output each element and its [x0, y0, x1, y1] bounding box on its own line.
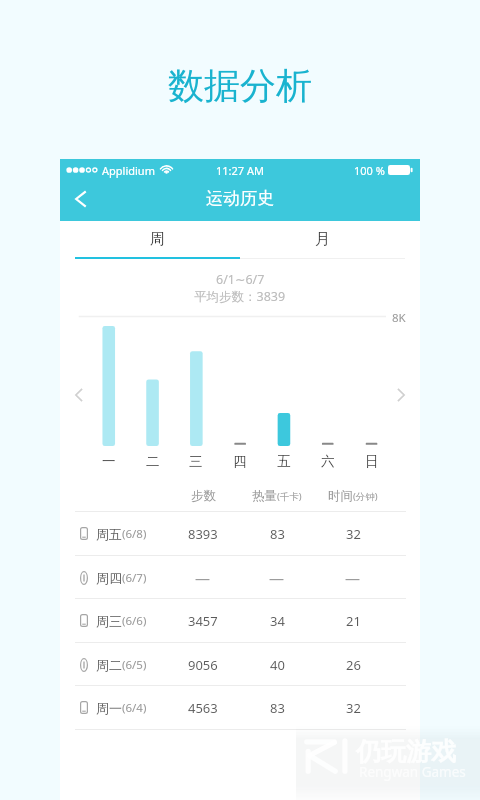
staticText: 6/1∼6/7 — [216, 271, 265, 287]
staticText: 时间 — [328, 488, 353, 504]
staticText: 五 — [277, 453, 291, 470]
staticText: Rengwan Games — [359, 763, 466, 781]
button[interactable]: 周 — [75, 223, 240, 256]
staticText: (6/4) — [122, 700, 147, 716]
button[interactable]: 周四 — [60, 556, 420, 599]
button[interactable]: 月 — [240, 223, 405, 256]
staticText: 周三 — [96, 613, 122, 629]
staticText: 二 — [146, 453, 160, 470]
staticText: (6/5) — [122, 657, 147, 673]
staticText: 步数 — [191, 488, 216, 504]
button[interactable]: 周三 — [60, 599, 420, 642]
staticText: 平均步数：3839 — [194, 288, 286, 304]
button[interactable]: 周二 — [60, 643, 420, 686]
staticText: 9056 — [188, 656, 218, 674]
staticText: (6/7) — [122, 570, 147, 586]
staticText: 11:27 AM — [216, 163, 264, 177]
staticText: 四 — [233, 453, 247, 470]
staticText: 周五 — [96, 526, 122, 542]
staticText: — — [269, 568, 285, 588]
staticText: 21 — [346, 612, 361, 630]
staticText: 26 — [346, 656, 361, 674]
staticText: 40 — [270, 656, 285, 674]
staticText: 月 — [315, 230, 330, 249]
staticText: 周二 — [96, 657, 122, 673]
staticText: Applidium — [102, 163, 155, 178]
staticText: (6/6) — [122, 613, 147, 629]
staticText: (千卡) — [277, 490, 302, 503]
staticText: 8K — [392, 310, 406, 324]
staticText: (6/8) — [122, 526, 147, 542]
button[interactable]: Next week — [390, 384, 412, 406]
staticText: 周 — [150, 230, 165, 249]
staticText: 日 — [365, 453, 379, 470]
staticText: 一 — [102, 453, 116, 470]
staticText: 3457 — [188, 612, 218, 630]
staticText: 六 — [321, 453, 335, 470]
button[interactable]: Back — [64, 183, 96, 215]
staticText: 8393 — [188, 525, 218, 543]
button[interactable]: 周一 — [60, 686, 420, 729]
staticText: 32 — [346, 699, 361, 717]
staticText: — — [345, 568, 361, 588]
staticText: 83 — [270, 699, 285, 717]
staticText: 32 — [346, 525, 361, 543]
staticText: 周一 — [96, 700, 122, 716]
staticText: 热量 — [252, 488, 277, 504]
staticText: 仍玩游戏 — [356, 736, 456, 767]
staticText: 100 % — [354, 163, 385, 178]
staticText: 34 — [270, 612, 285, 630]
staticText: (分钟) — [353, 490, 378, 503]
staticText: 运动历史 — [206, 188, 274, 209]
staticText: — — [195, 568, 211, 588]
staticText: 数据分析 — [168, 63, 312, 108]
button[interactable]: 周五 — [60, 512, 420, 555]
staticText: 三 — [189, 453, 203, 470]
staticText: 周四 — [96, 570, 122, 586]
staticText: 4563 — [188, 699, 218, 717]
button[interactable]: Previous week — [68, 384, 90, 406]
staticText: 83 — [270, 525, 285, 543]
